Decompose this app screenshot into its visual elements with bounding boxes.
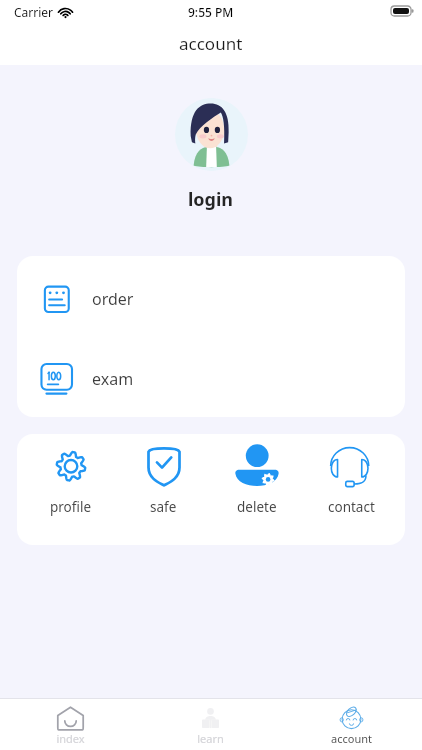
staticText: Carrier [14, 4, 54, 20]
button[interactable]: exam [17, 336, 405, 416]
staticText: learn [197, 731, 224, 744]
button[interactable]: index [0, 699, 140, 750]
button[interactable]: order [17, 256, 405, 336]
staticText: exam [92, 368, 134, 390]
button[interactable]: safe [117, 434, 210, 544]
staticText: account [179, 32, 243, 55]
staticText: 9:55 PM [188, 4, 234, 20]
button[interactable]: contact [304, 434, 398, 544]
staticText: contact [328, 498, 375, 516]
staticText: safe [150, 498, 177, 516]
button[interactable]: delete [210, 434, 304, 544]
button[interactable]: account [281, 699, 422, 750]
staticText: order [92, 288, 134, 310]
staticText: login [188, 187, 234, 212]
staticText: index [56, 731, 85, 744]
staticText: profile [50, 498, 91, 516]
staticText: delete [237, 498, 277, 516]
button[interactable]: learn [140, 699, 281, 750]
button[interactable]: profile [24, 434, 117, 544]
staticText: account [331, 731, 372, 744]
